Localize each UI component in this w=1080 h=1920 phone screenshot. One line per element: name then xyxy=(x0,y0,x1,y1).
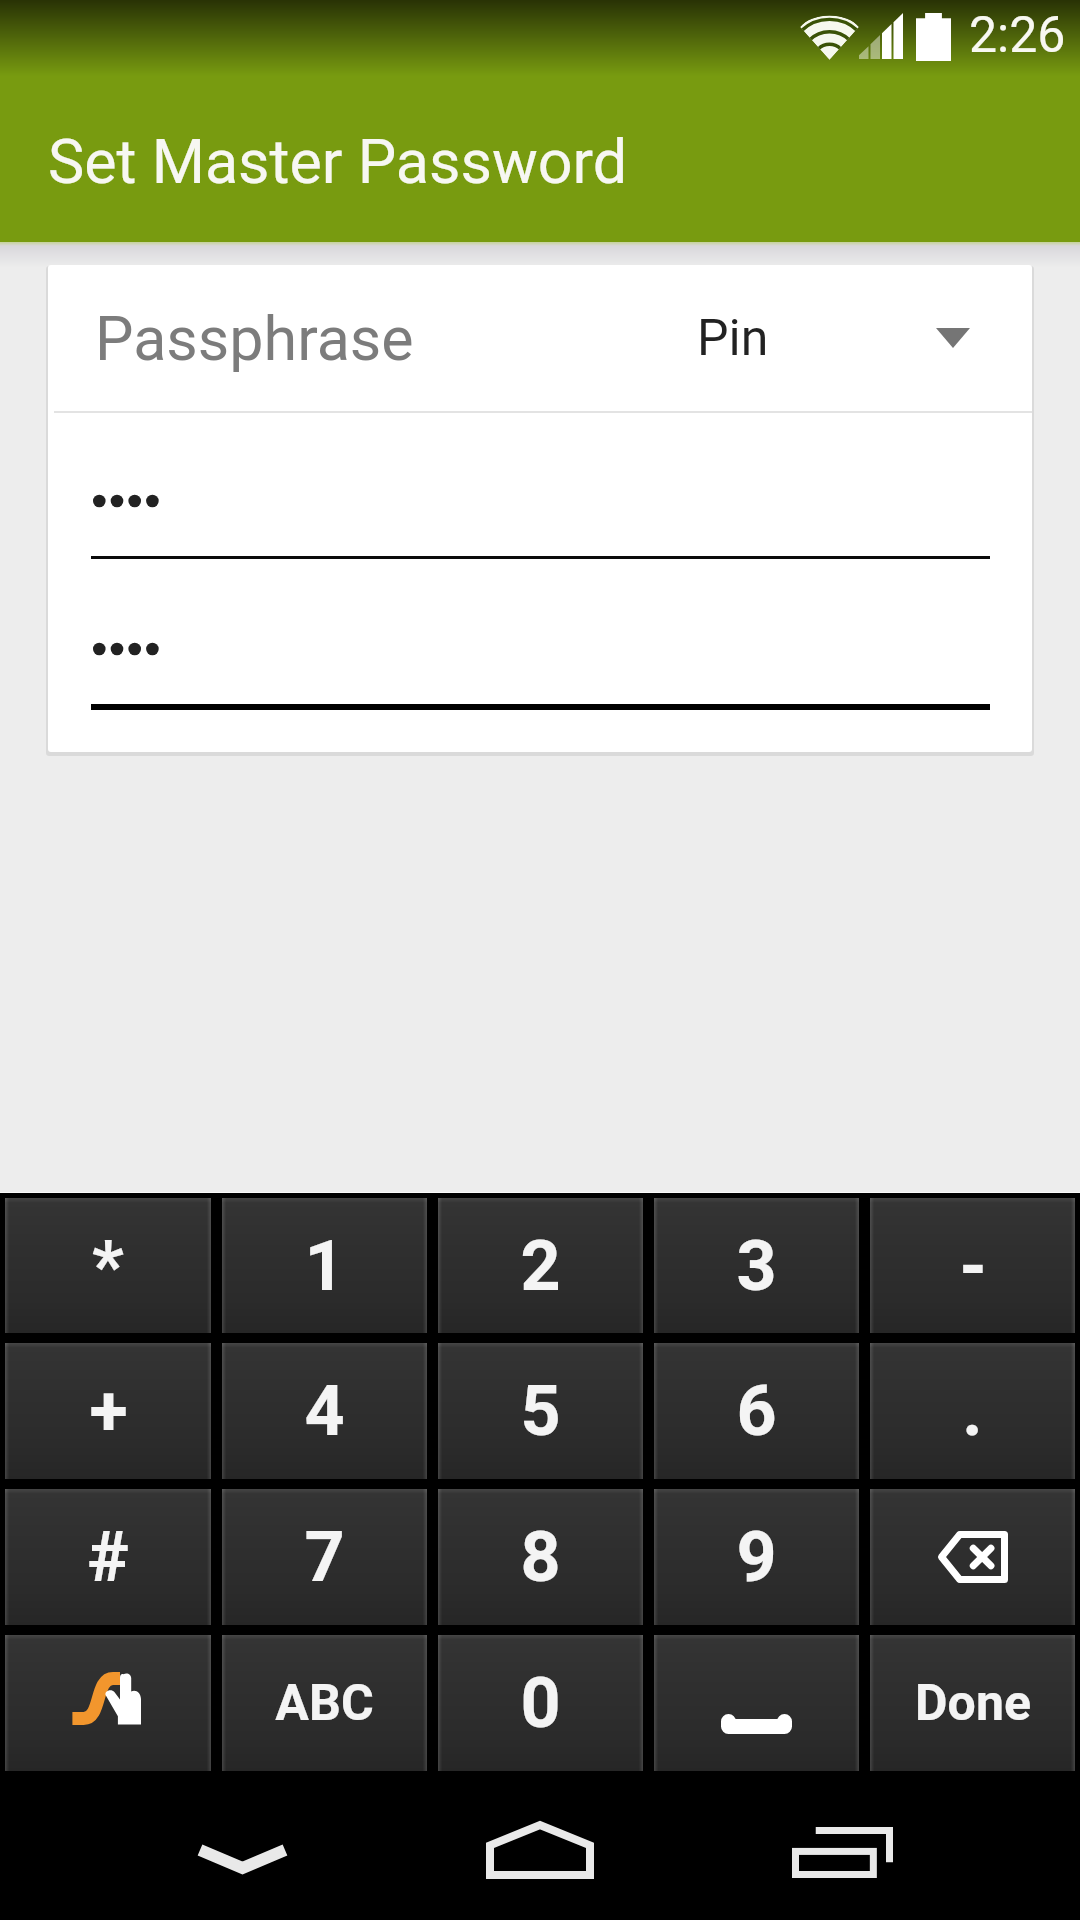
staticText: Pin xyxy=(697,309,769,368)
button[interactable]: Recent apps xyxy=(754,1785,930,1906)
staticText: . xyxy=(962,1370,983,1452)
staticText: 1 xyxy=(304,1225,345,1307)
button[interactable]: Master password xyxy=(91,464,990,559)
button[interactable]: Done xyxy=(870,1635,1075,1771)
button[interactable]: 4 xyxy=(222,1343,427,1479)
button[interactable]: Space xyxy=(654,1635,859,1771)
button[interactable]: . xyxy=(870,1343,1075,1479)
staticText: 3 xyxy=(736,1225,777,1307)
staticText: 2 xyxy=(520,1225,561,1307)
button[interactable]: 6 xyxy=(654,1343,859,1479)
staticText: ABC xyxy=(275,1674,374,1733)
button[interactable]: 8 xyxy=(438,1489,643,1625)
button[interactable]: Home xyxy=(452,1785,628,1906)
button[interactable]: Confirm master password xyxy=(91,612,990,710)
staticText: 4 xyxy=(304,1370,345,1452)
button[interactable]: Pin xyxy=(657,265,1032,411)
button[interactable]: * xyxy=(5,1198,211,1333)
button[interactable]: 9 xyxy=(654,1489,859,1625)
staticText: Set Master Password xyxy=(48,126,628,197)
staticText: 9 xyxy=(736,1516,777,1598)
button[interactable]: Backspace xyxy=(870,1489,1075,1625)
staticText: 2:26 xyxy=(969,6,1066,65)
staticText: # xyxy=(87,1516,129,1598)
button[interactable]: ABC xyxy=(222,1635,427,1771)
button[interactable]: 0 xyxy=(438,1635,643,1771)
staticText: 6 xyxy=(736,1370,777,1452)
staticText: + xyxy=(89,1370,128,1452)
staticText: Passphrase xyxy=(95,303,414,374)
staticText: - xyxy=(959,1225,987,1307)
button[interactable]: 2 xyxy=(438,1198,643,1333)
button[interactable]: - xyxy=(870,1198,1075,1333)
button[interactable]: 3 xyxy=(654,1198,859,1333)
button[interactable]: 5 xyxy=(438,1343,643,1479)
button[interactable]: 7 xyxy=(222,1489,427,1625)
staticText: 5 xyxy=(520,1370,561,1452)
button[interactable]: + xyxy=(5,1343,211,1479)
button[interactable]: Swipe input xyxy=(5,1635,211,1771)
button[interactable]: # xyxy=(5,1489,211,1625)
staticText: 0 xyxy=(520,1662,561,1744)
button[interactable]: Back xyxy=(154,1785,330,1906)
staticText: * xyxy=(92,1225,124,1307)
staticText: Done xyxy=(915,1674,1031,1733)
staticText: 7 xyxy=(304,1516,345,1598)
button[interactable]: 1 xyxy=(222,1198,427,1333)
staticText: 8 xyxy=(520,1516,561,1598)
